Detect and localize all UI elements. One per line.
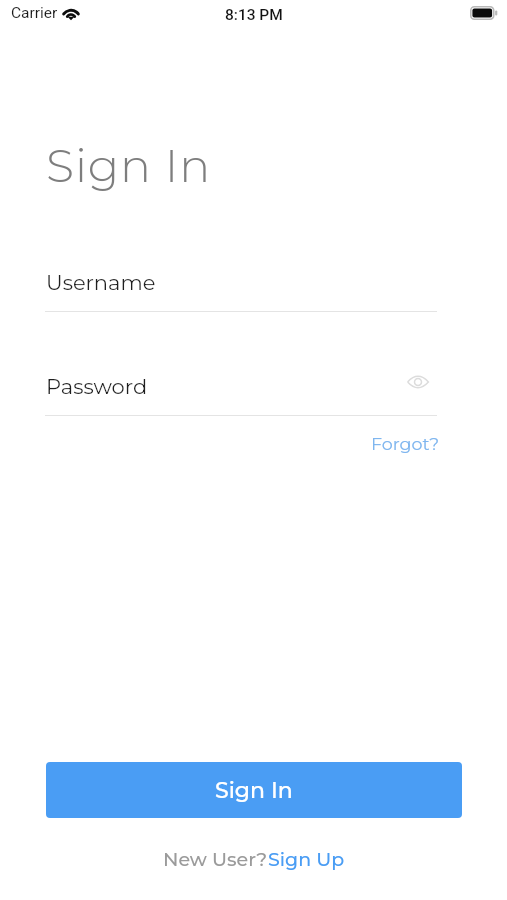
staticText: Username	[46, 270, 156, 296]
staticText: Carrier	[11, 4, 58, 22]
staticText: Sign In	[215, 777, 293, 804]
button[interactable]: Sign Up	[268, 848, 345, 871]
button[interactable]: Forgot?	[371, 433, 440, 454]
button[interactable]: Sign In	[46, 762, 462, 818]
staticText: New User?	[163, 848, 268, 871]
staticText: 8:13 PM	[225, 6, 283, 24]
staticText: Forgot?	[371, 433, 440, 454]
staticText: Password	[46, 374, 148, 400]
button[interactable]: Show password	[405, 369, 431, 395]
staticText: Sign In	[46, 137, 212, 193]
